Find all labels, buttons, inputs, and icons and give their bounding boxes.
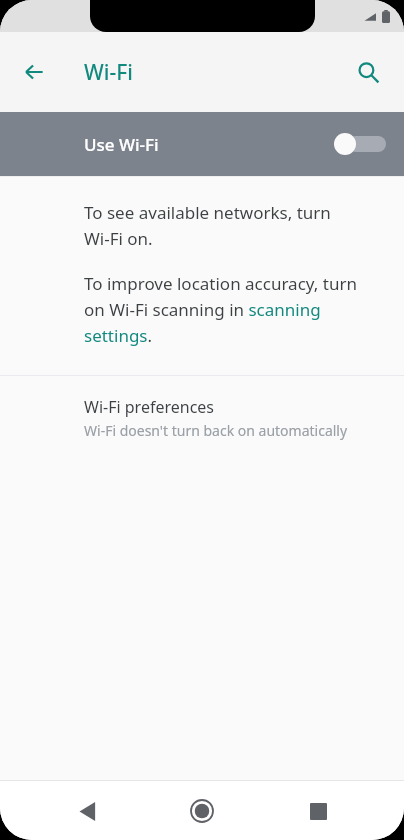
button[interactable]: Home — [173, 782, 231, 840]
button[interactable]: Back — [58, 782, 116, 840]
button[interactable]: Use Wi-Fi — [0, 112, 404, 176]
staticText: Wi-Fi — [84, 58, 133, 87]
button[interactable]: Search — [344, 48, 392, 96]
button[interactable]: Navigate up — [10, 48, 58, 96]
staticText: Wi-Fi preferences — [84, 396, 215, 418]
staticText: To see available networks, turn Wi-Fi on… — [84, 201, 331, 250]
button[interactable]: Wi-Fi preferences — [0, 376, 404, 456]
button[interactable]: Recent apps — [289, 782, 347, 840]
staticText: Use Wi-Fi — [84, 133, 159, 156]
button[interactable]: To improve location accuracy, turn on Wi… — [84, 272, 357, 347]
staticText: Wi-Fi doesn't turn back on automatically — [84, 421, 348, 440]
